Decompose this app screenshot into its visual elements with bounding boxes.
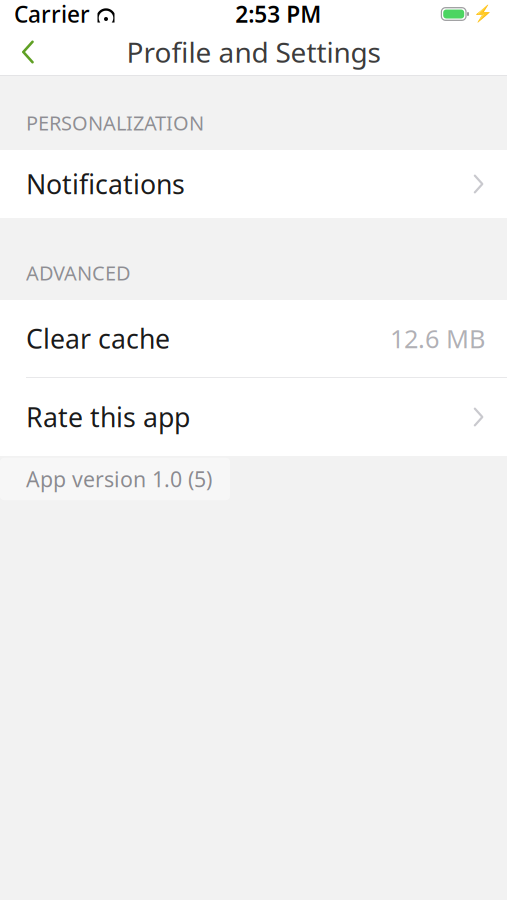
staticText: 12.6 MB <box>390 322 485 355</box>
staticText: Profile and Settings <box>126 33 380 71</box>
staticText: Carrier <box>14 0 90 29</box>
button[interactable]: Back <box>0 28 56 76</box>
staticText: App version 1.0 (5) <box>26 465 212 493</box>
staticText: 2:53 PM <box>235 0 321 29</box>
staticText: Notifications <box>26 166 185 202</box>
staticText: PERSONALIZATION <box>26 109 204 136</box>
staticText: Rate this app <box>26 399 190 435</box>
button[interactable]: Notifications <box>0 150 507 218</box>
button[interactable]: Clear cache <box>0 300 507 377</box>
staticText: ⚡ <box>473 5 493 23</box>
staticText: ADVANCED <box>26 259 131 286</box>
staticText: Clear cache <box>26 321 170 356</box>
button[interactable]: Rate this app <box>0 378 507 456</box>
